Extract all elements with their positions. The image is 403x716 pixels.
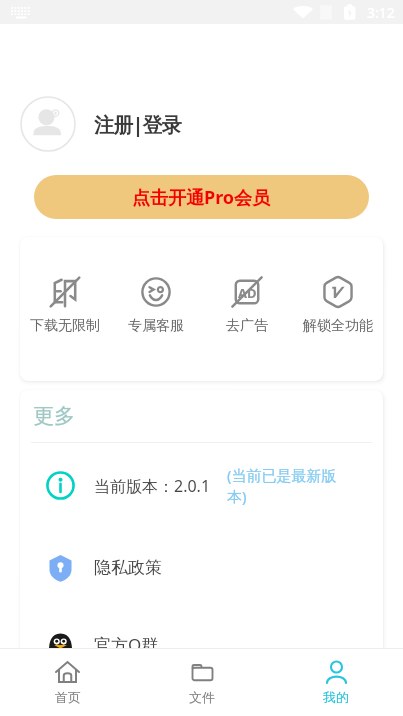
button[interactable]: 专属客服 xyxy=(110,237,201,381)
staticText: 我的 xyxy=(323,689,349,705)
button[interactable]: 隐私政策 xyxy=(20,527,383,608)
button[interactable]: 官方Q群 xyxy=(20,608,383,680)
staticText: 点击开通Pro会员 xyxy=(132,185,271,210)
button[interactable]: 当前版本：2.0.1 xyxy=(20,443,383,527)
staticText: 当前版本：2.0.1 xyxy=(94,475,211,497)
button[interactable]: 下载无限制 xyxy=(20,237,110,381)
staticText: 首页 xyxy=(55,689,81,705)
button[interactable]: 注册|登录 xyxy=(0,96,403,152)
staticText: 文件 xyxy=(189,689,215,705)
button[interactable]: 我的 xyxy=(269,649,403,716)
button[interactable]: 首页 xyxy=(0,649,135,716)
button[interactable]: 文件 xyxy=(135,649,269,716)
staticText: 专属客服 xyxy=(128,317,184,335)
staticText: 解锁全功能 xyxy=(303,317,373,335)
staticText: 隐私政策 xyxy=(94,557,162,578)
staticText: 3:12 xyxy=(367,3,395,22)
staticText: 官方Q群 xyxy=(94,633,159,656)
button[interactable]: AD xyxy=(201,237,292,381)
staticText: 更多 xyxy=(33,403,75,429)
staticText: 去广告 xyxy=(226,317,268,335)
button[interactable]: 点击开通Pro会员 xyxy=(34,175,369,219)
staticText: 注册|登录 xyxy=(94,111,182,138)
staticText: (当前已是最新版本) xyxy=(227,465,347,506)
button[interactable]: 解锁全功能 xyxy=(292,237,383,381)
staticText: AD xyxy=(238,284,257,302)
staticText: 下载无限制 xyxy=(30,317,100,335)
